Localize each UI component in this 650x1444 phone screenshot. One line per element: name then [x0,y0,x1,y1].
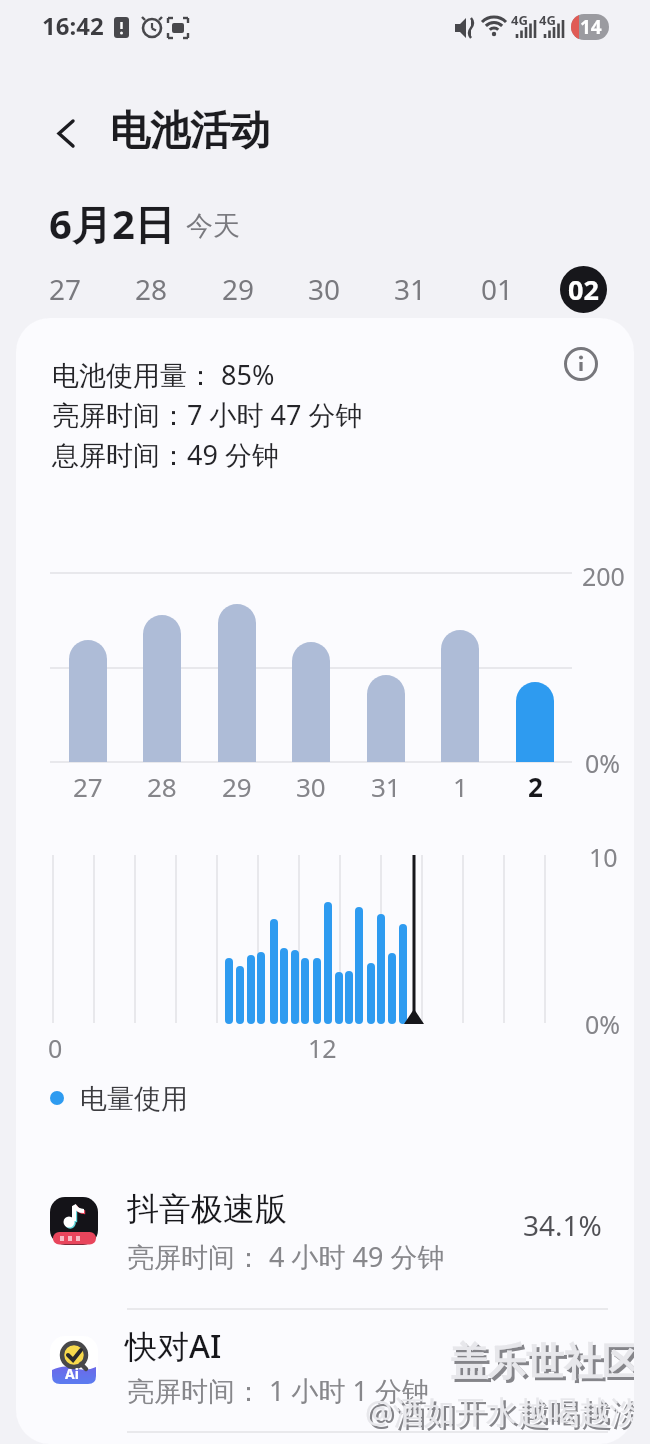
staticText: 14 [580,14,602,40]
staticText: 0 [48,1031,63,1065]
button[interactable]: 01 [464,262,530,316]
staticText: 1 [453,769,468,804]
staticText: 亮屏时间： 4 小时 49 分钟 [127,1238,445,1275]
staticText: 息屏时间：49 分钟 [52,436,279,473]
staticText: @酒如开水越喝越淡 [368,1393,634,1435]
staticText: 4G [539,11,556,29]
staticText: 02 [568,271,599,308]
button[interactable]: 抖音极速版 [16,1174,634,1310]
staticText: 01 [481,270,514,308]
staticText: 31 [394,270,427,308]
staticText: 电池使用量： 85% [52,356,275,393]
staticText: 30 [296,769,326,804]
button[interactable]: 28 [118,262,184,316]
staticText: 28 [147,769,177,804]
staticText: 30 [308,270,341,308]
staticText: 今天 [186,209,240,243]
staticText: 28 [135,270,168,308]
staticText: 盖乐世社区 [453,1341,634,1389]
staticText: 16:42 [42,9,104,42]
staticText: 12 [308,1031,337,1065]
staticText: 27 [73,769,103,804]
button[interactable]: 27 [32,262,98,316]
button[interactable] [557,340,605,388]
staticText: 电池活动 [110,105,270,155]
staticText: 29 [222,270,255,308]
staticText: 抖音极速版 [127,1189,287,1229]
staticText: 27 [49,270,82,308]
staticText: @酒如开水越喝越淡 [365,1390,634,1432]
staticText: 亮屏时间：7 小时 47 分钟 [52,396,363,433]
button[interactable]: 31 [377,262,443,316]
staticText: 29 [222,769,252,804]
staticText: 2 [528,769,543,804]
staticText: 电量使用 [80,1082,188,1116]
staticText: 6月2日 [49,196,175,251]
staticText: 0% [585,1007,621,1041]
button[interactable]: 29 [205,262,271,316]
staticText: 10 [589,840,618,874]
staticText: 0% [585,746,621,780]
staticText: 亮屏时间： 1 小时 1 分钟 [127,1372,429,1409]
button[interactable]: 30 [291,262,357,316]
staticText: 4G [511,11,528,29]
staticText: 34.1% [523,1206,602,1244]
button[interactable]: 02 [556,262,610,316]
staticText: 31 [371,769,401,804]
staticText: 快对AI [125,1324,222,1368]
staticText: 200 [582,559,625,593]
button[interactable]: 快对AI [16,1312,634,1434]
staticText: 盖乐世社区 [450,1338,634,1386]
staticText: Ai [65,1364,79,1383]
button[interactable] [40,105,92,161]
